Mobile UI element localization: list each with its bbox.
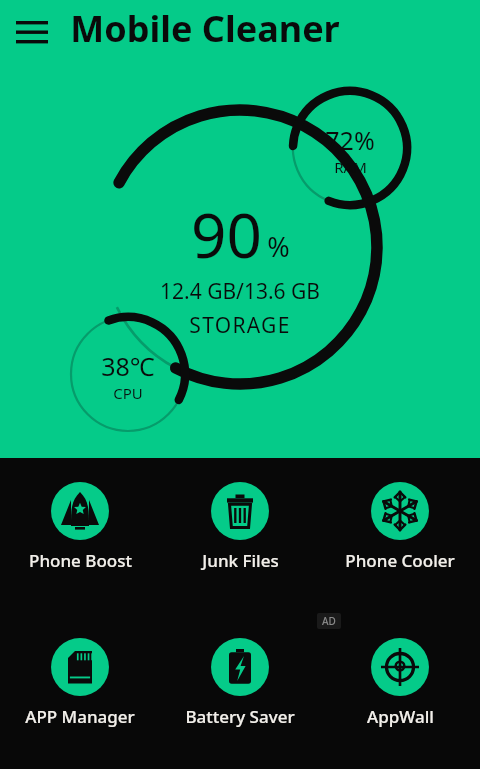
button[interactable]: Phone Boost bbox=[6, 482, 154, 572]
staticText: 12.4 GB/13.6 GB bbox=[160, 277, 320, 306]
staticText: Mobile Cleaner bbox=[70, 4, 340, 53]
button[interactable]: Storage, RAM and CPU status bbox=[0, 0, 480, 458]
staticText: Junk Files bbox=[202, 549, 279, 572]
staticText: 90 bbox=[191, 192, 262, 276]
button[interactable]: Junk Files bbox=[166, 482, 314, 572]
button[interactable]: AD bbox=[322, 614, 336, 628]
staticText: APP Manager bbox=[25, 705, 135, 728]
staticText: CPU bbox=[113, 383, 143, 403]
button[interactable]: Open navigation menu bbox=[8, 8, 54, 54]
button[interactable]: Phone Cooler bbox=[326, 482, 474, 572]
button[interactable]: AppWall bbox=[326, 638, 474, 728]
button[interactable]: Battery Saver bbox=[166, 638, 314, 728]
staticText: RAM bbox=[334, 157, 367, 177]
staticText: Battery Saver bbox=[185, 705, 295, 728]
staticText: % bbox=[267, 228, 290, 265]
staticText: 72% bbox=[325, 123, 375, 157]
staticText: 38℃ bbox=[101, 349, 155, 383]
staticText: Phone Cooler bbox=[345, 549, 455, 572]
staticText: AppWall bbox=[367, 705, 434, 728]
staticText: AD bbox=[322, 614, 336, 628]
button[interactable]: APP Manager bbox=[6, 638, 154, 728]
staticText: Phone Boost bbox=[29, 549, 132, 572]
staticText: STORAGE bbox=[189, 311, 291, 340]
